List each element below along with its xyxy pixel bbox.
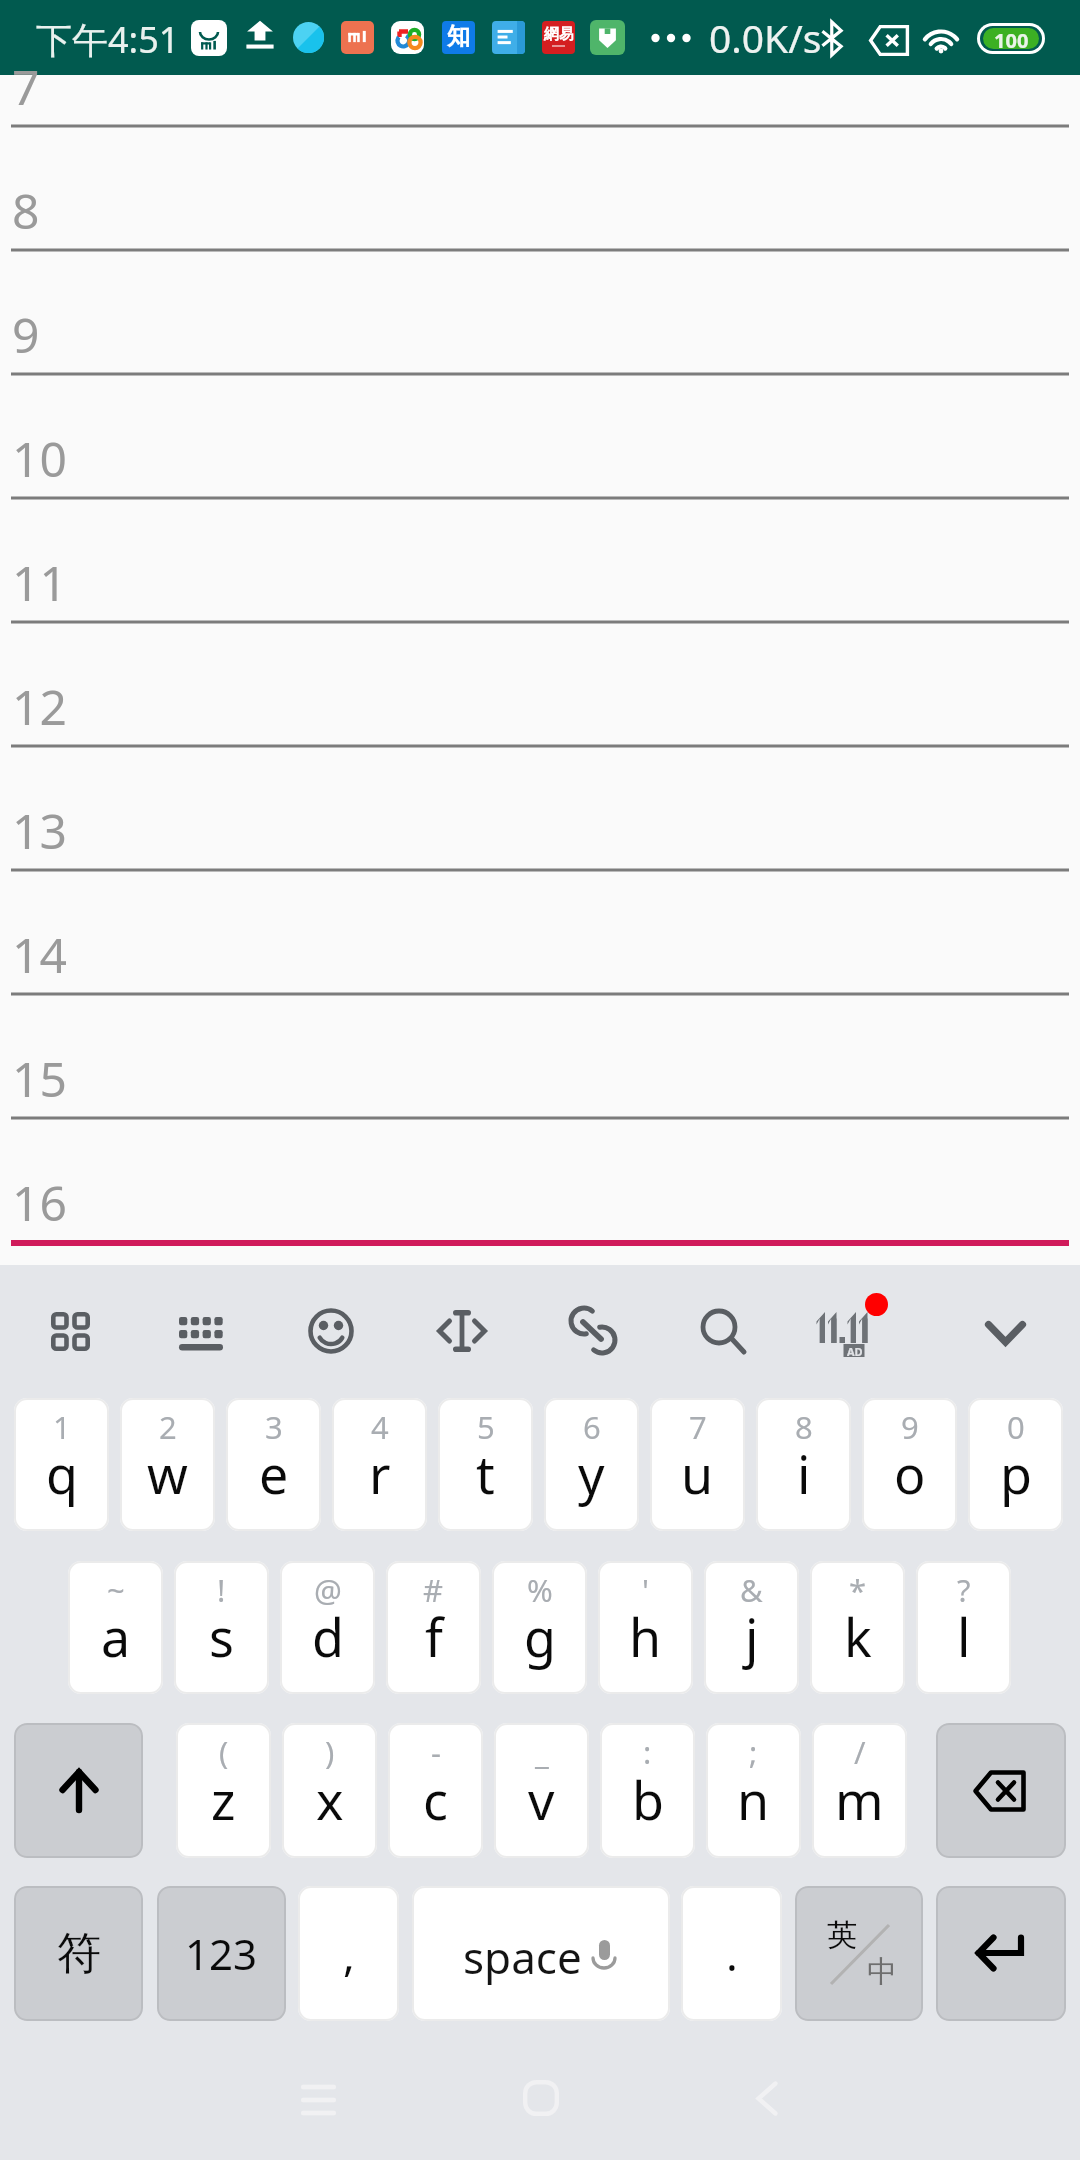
staticText: # <box>423 1569 444 1611</box>
staticText: k <box>844 1601 872 1672</box>
button[interactable]: Cursor <box>407 1276 517 1386</box>
button[interactable]: 3 <box>226 1398 321 1531</box>
button[interactable]: ? <box>916 1561 1011 1694</box>
staticText: 7 <box>12 54 40 119</box>
staticText: r <box>369 1438 391 1509</box>
button[interactable]: / <box>812 1723 907 1858</box>
staticText: 100 <box>994 28 1029 48</box>
staticText: t <box>476 1438 495 1509</box>
button[interactable]: Apps <box>15 1276 125 1386</box>
staticText: 11 <box>12 550 67 615</box>
staticText: 12 <box>12 674 67 739</box>
button[interactable]: , <box>298 1886 399 2021</box>
button[interactable]: 6 <box>544 1398 639 1531</box>
staticText: f <box>425 1601 443 1672</box>
button[interactable]: ( <box>176 1723 271 1858</box>
button[interactable]: ) <box>282 1723 377 1858</box>
button[interactable]: Search <box>668 1276 778 1386</box>
button[interactable]: Emoji <box>276 1276 386 1386</box>
staticText: 1 <box>53 1406 71 1448</box>
button[interactable]: Enter <box>936 1886 1066 2021</box>
staticText: 5 <box>477 1406 495 1448</box>
staticText: AD <box>847 1344 863 1357</box>
button[interactable]: space <box>412 1886 670 2021</box>
staticText: g <box>524 1601 556 1672</box>
staticText: 14 <box>12 922 67 987</box>
button[interactable]: Hide keyboard <box>950 1276 1060 1386</box>
staticText: 123 <box>185 1925 258 1982</box>
button[interactable]: Shift <box>14 1723 143 1858</box>
button[interactable]: 2 <box>120 1398 215 1531</box>
staticText: 中 <box>867 1953 897 1991</box>
button[interactable]: ~ <box>68 1561 163 1694</box>
staticText: 15 <box>12 1046 67 1111</box>
staticText: space <box>463 1927 582 1987</box>
staticText: ~ <box>107 1569 125 1611</box>
staticText: ' <box>642 1569 649 1611</box>
staticText: 知 <box>447 22 470 51</box>
button[interactable]: 9 <box>862 1398 957 1531</box>
staticText: a <box>101 1601 131 1672</box>
button[interactable]: & <box>704 1561 799 1694</box>
staticText: _ <box>535 1731 549 1773</box>
staticText: 13 <box>12 798 67 863</box>
staticText: / <box>854 1731 866 1773</box>
staticText: v <box>528 1764 555 1835</box>
staticText: 2 <box>159 1406 177 1448</box>
staticText: m <box>835 1764 884 1835</box>
button[interactable]: @ <box>280 1561 375 1694</box>
button[interactable]: 7 <box>650 1398 745 1531</box>
button[interactable]: % <box>492 1561 587 1694</box>
button[interactable]: ' <box>598 1561 693 1694</box>
staticText: 下午4:51 <box>36 15 180 64</box>
staticText: ( <box>219 1731 229 1773</box>
button[interactable]: . <box>681 1886 782 2021</box>
button[interactable]: 4 <box>332 1398 427 1531</box>
button[interactable]: : <box>600 1723 695 1858</box>
button[interactable]: Keyboard <box>146 1276 256 1386</box>
staticText: l <box>957 1601 971 1672</box>
staticText: n <box>737 1764 770 1835</box>
staticText: i <box>797 1438 811 1509</box>
staticText: ! <box>217 1569 226 1611</box>
button[interactable]: 1 <box>14 1398 109 1531</box>
staticText: 8 <box>795 1406 813 1448</box>
staticText: % <box>527 1569 553 1611</box>
staticText: b <box>632 1764 664 1835</box>
staticText: q <box>46 1438 78 1509</box>
button[interactable]: ! <box>174 1561 269 1694</box>
staticText: * <box>849 1569 867 1611</box>
button[interactable]: 符 <box>14 1886 143 2021</box>
button[interactable]: - <box>388 1723 483 1858</box>
button[interactable]: 5 <box>438 1398 533 1531</box>
button[interactable]: Clipboard <box>538 1276 648 1386</box>
staticText: 符 <box>57 1926 101 1981</box>
button[interactable]: Promotion <box>783 1276 893 1386</box>
button[interactable]: 0 <box>968 1398 1063 1531</box>
staticText: s <box>209 1601 234 1672</box>
button[interactable]: _ <box>494 1723 589 1858</box>
button[interactable]: Backspace <box>936 1723 1066 1858</box>
staticText: p <box>1000 1438 1032 1509</box>
button[interactable]: 123 <box>157 1886 286 2021</box>
button[interactable]: 8 <box>756 1398 851 1531</box>
button[interactable]: Home <box>505 2062 577 2134</box>
staticText: 6 <box>583 1406 601 1448</box>
button[interactable]: Recent apps <box>282 2064 354 2136</box>
button[interactable]: Switch English Chinese <box>795 1886 923 2021</box>
staticText: o <box>894 1438 926 1509</box>
staticText: h <box>629 1601 662 1672</box>
staticText: 7 <box>689 1406 707 1448</box>
button[interactable]: * <box>810 1561 905 1694</box>
staticText: 3 <box>265 1406 283 1448</box>
staticText: w <box>147 1438 188 1509</box>
button[interactable]: ; <box>706 1723 801 1858</box>
staticText: 網易 <box>544 25 574 44</box>
staticText: x <box>316 1764 344 1835</box>
button[interactable]: # <box>386 1561 481 1694</box>
staticText: ) <box>325 1731 335 1773</box>
staticText: j <box>745 1601 759 1672</box>
staticText: , <box>343 1924 355 1984</box>
staticText: & <box>740 1569 763 1611</box>
